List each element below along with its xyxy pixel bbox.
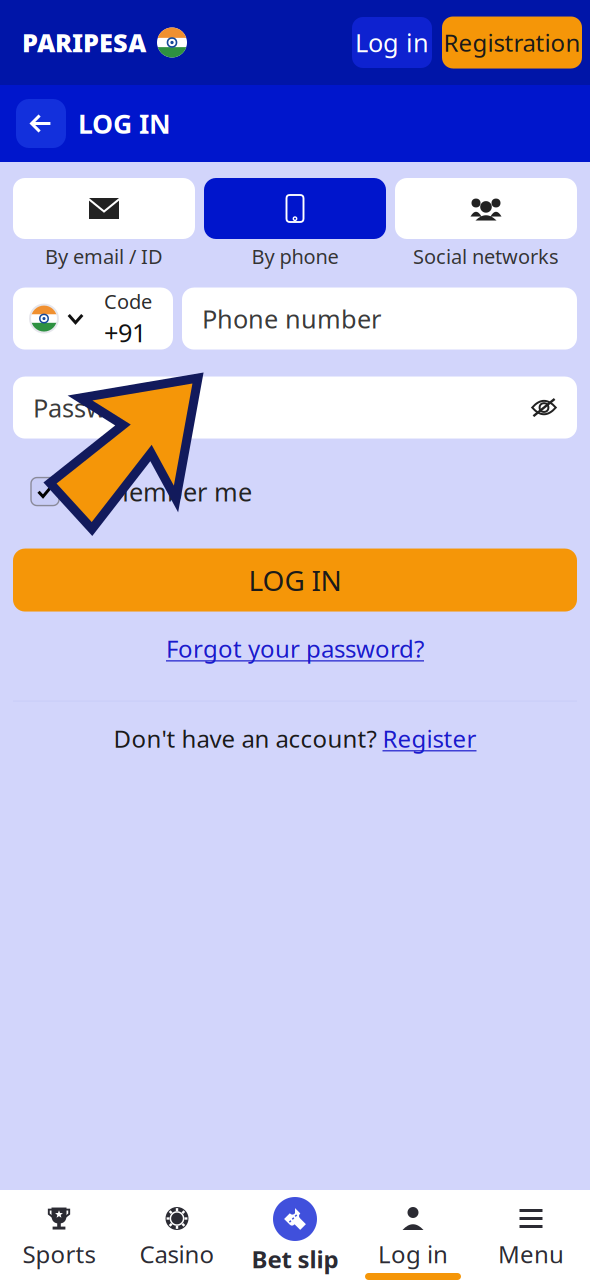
staticText: LOG IN [78,106,171,141]
button[interactable]: Casino [118,1190,236,1280]
staticText: Remember me [75,475,252,508]
button[interactable]: Register [382,723,476,754]
button[interactable]: Log in [354,1190,472,1280]
staticText: +91 [104,315,146,349]
button[interactable]: Bet slip [236,1190,354,1280]
staticText: Forgot your password? [166,633,424,664]
button[interactable]: LOG IN [13,549,577,612]
staticText: Password [33,391,147,424]
button[interactable]: Log in [352,17,432,68]
button[interactable]: Menu [472,1190,590,1280]
staticText: PARIPESA [22,26,146,59]
staticText: Log in [378,1238,448,1270]
staticText: Sports [22,1238,95,1270]
staticText: Register [382,723,476,754]
staticText: Code [104,288,152,315]
staticText: Menu [498,1238,564,1270]
button[interactable]: Sports [0,1190,118,1280]
button[interactable]: Forgot your password? [0,633,590,665]
staticText: By phone [251,243,338,270]
staticText: Registration [443,27,580,58]
button[interactable]: Registration [442,16,582,68]
staticText: By email / ID [45,243,163,270]
staticText: Casino [139,1238,214,1270]
button[interactable]: Back [16,99,66,148]
staticText: LOG IN [248,561,341,599]
staticText: Phone number [202,302,381,335]
button[interactable]: By phone [204,178,386,270]
staticText: Don't have an account? [113,723,382,754]
button[interactable]: Social networks [395,178,577,270]
staticText: Log in [355,26,429,59]
button[interactable]: Phone number [182,288,577,350]
button[interactable]: By email / ID [13,178,195,270]
staticText: Social networks [413,243,559,270]
button[interactable]: Remember me [31,478,577,506]
staticText: Bet slip [251,1243,338,1275]
button[interactable]: Password [13,377,577,439]
button[interactable]: Code [13,288,173,350]
